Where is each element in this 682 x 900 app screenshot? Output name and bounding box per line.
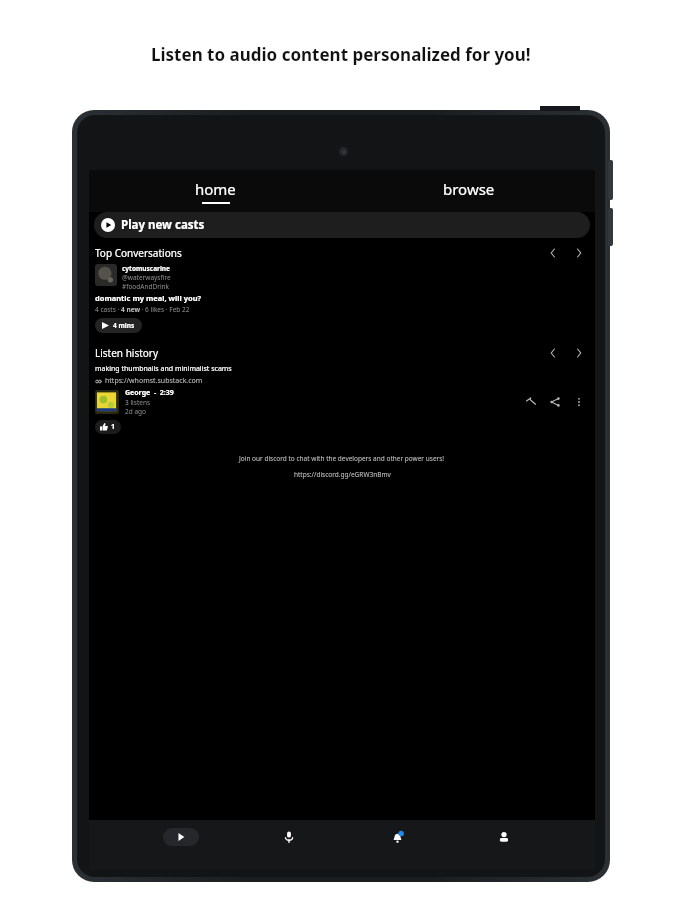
staticText: browse	[443, 179, 495, 199]
staticText: home	[195, 179, 236, 199]
staticText: 2d ago	[125, 407, 146, 416]
staticText: https://discord.gg/eGRW3nBmv	[294, 470, 391, 479]
button[interactable]: Previous	[545, 245, 561, 261]
button[interactable]: Play new casts	[94, 212, 590, 238]
staticText: making thumbnails and minimalist scams	[95, 364, 232, 374]
button[interactable]: Next	[571, 345, 587, 361]
staticText: 4 new	[121, 305, 140, 314]
button[interactable]: Reply	[523, 394, 539, 410]
button[interactable]: Next	[571, 245, 587, 261]
staticText: 4 casts ·	[95, 305, 121, 314]
staticText: Join our discord to chat with the develo…	[239, 454, 445, 463]
button[interactable]: More options	[571, 394, 587, 410]
button[interactable]: https://discord.gg/eGRW3nBmv	[294, 470, 391, 479]
staticText: 1	[111, 422, 116, 432]
staticText: Listen to audio content personalized for…	[151, 43, 531, 66]
button[interactable]: Notifications	[380, 820, 414, 854]
staticText: Play new casts	[121, 217, 205, 233]
staticText: https://whomst.substack.com	[105, 376, 203, 386]
staticText: 4 mins	[113, 321, 135, 330]
button[interactable]: 1	[95, 420, 121, 434]
button[interactable]: Share	[547, 394, 563, 410]
button[interactable]: home	[89, 170, 342, 212]
staticText: Top Conversations	[95, 246, 182, 260]
button[interactable]: Record	[272, 820, 306, 854]
button[interactable]: browse	[342, 170, 595, 212]
staticText: cytomuscarine	[122, 264, 170, 273]
staticText: George - 2:39	[125, 388, 174, 398]
staticText: @waterwaysfire	[122, 273, 171, 282]
staticText: Listen history	[95, 346, 159, 360]
staticText: #foodAndDrink	[122, 282, 170, 291]
button[interactable]: Profile	[487, 820, 521, 854]
staticText: 3 listens	[125, 398, 151, 407]
staticText: domantic my meal, will you?	[95, 293, 202, 303]
staticText: · 6 likes · Feb 22	[140, 305, 190, 314]
button[interactable]: Play	[163, 828, 199, 846]
button[interactable]: Previous	[545, 345, 561, 361]
button[interactable]: 4 mins	[95, 318, 142, 333]
